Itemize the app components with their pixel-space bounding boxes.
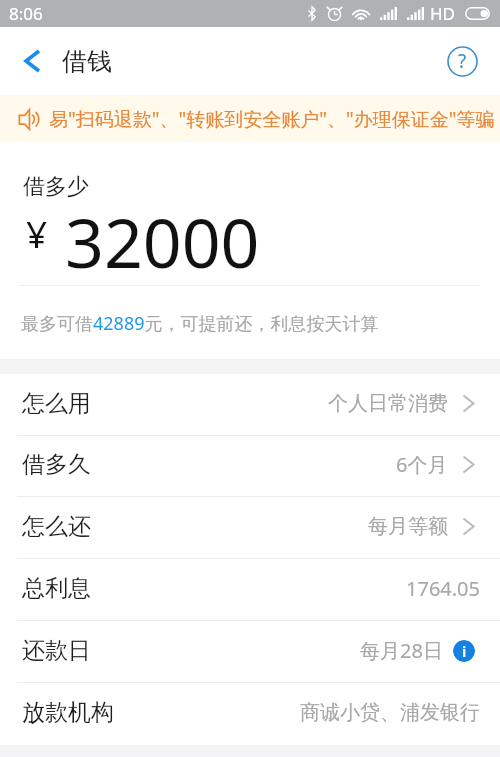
staticText: 还款日 — [22, 636, 91, 665]
staticText: ? — [458, 48, 467, 74]
button[interactable]: 易"扫码退款"、"转账到安全账户"、"办理保证金"等骗 — [0, 95, 500, 142]
button[interactable]: 怎么用 — [0, 374, 500, 436]
staticText: 借多久 — [22, 450, 91, 479]
button[interactable]: 还款日 — [0, 621, 500, 683]
button[interactable]: 借多久 — [0, 436, 500, 497]
button[interactable]: 放款机构 — [0, 683, 500, 745]
button[interactable]: 总利息 — [0, 559, 500, 621]
button[interactable]: Help — [442, 41, 482, 81]
staticText: 8:06 — [9, 2, 43, 25]
staticText: 1764.05 — [406, 575, 480, 602]
staticText: 借多少 — [23, 173, 89, 201]
staticText: 最多可借42889元，可提前还，利息按天计算 — [21, 311, 379, 336]
staticText: 商诚小贷、浦发银行 — [300, 700, 480, 725]
staticText: ¥ — [26, 208, 48, 258]
staticText: 怎么用 — [22, 389, 91, 418]
staticText: 易"扫码退款"、"转账到安全账户"、"办理保证金"等骗 — [49, 106, 495, 132]
staticText: 每月28日 — [360, 637, 443, 664]
staticText: 6个月 — [396, 451, 448, 478]
staticText: 32000 — [65, 195, 260, 288]
staticText: 借钱 — [62, 46, 112, 77]
staticText: HD — [430, 2, 456, 25]
staticText: 总利息 — [22, 574, 91, 603]
staticText: i — [462, 642, 467, 661]
button[interactable]: More info about repayment date — [453, 640, 475, 662]
staticText: 放款机构 — [22, 698, 114, 727]
staticText: 每月等额 — [368, 514, 448, 539]
button[interactable]: Back — [10, 39, 54, 83]
staticText: 个人日常消费 — [328, 391, 448, 416]
button[interactable]: 怎么还 — [0, 497, 500, 559]
staticText: 怎么还 — [22, 512, 91, 541]
